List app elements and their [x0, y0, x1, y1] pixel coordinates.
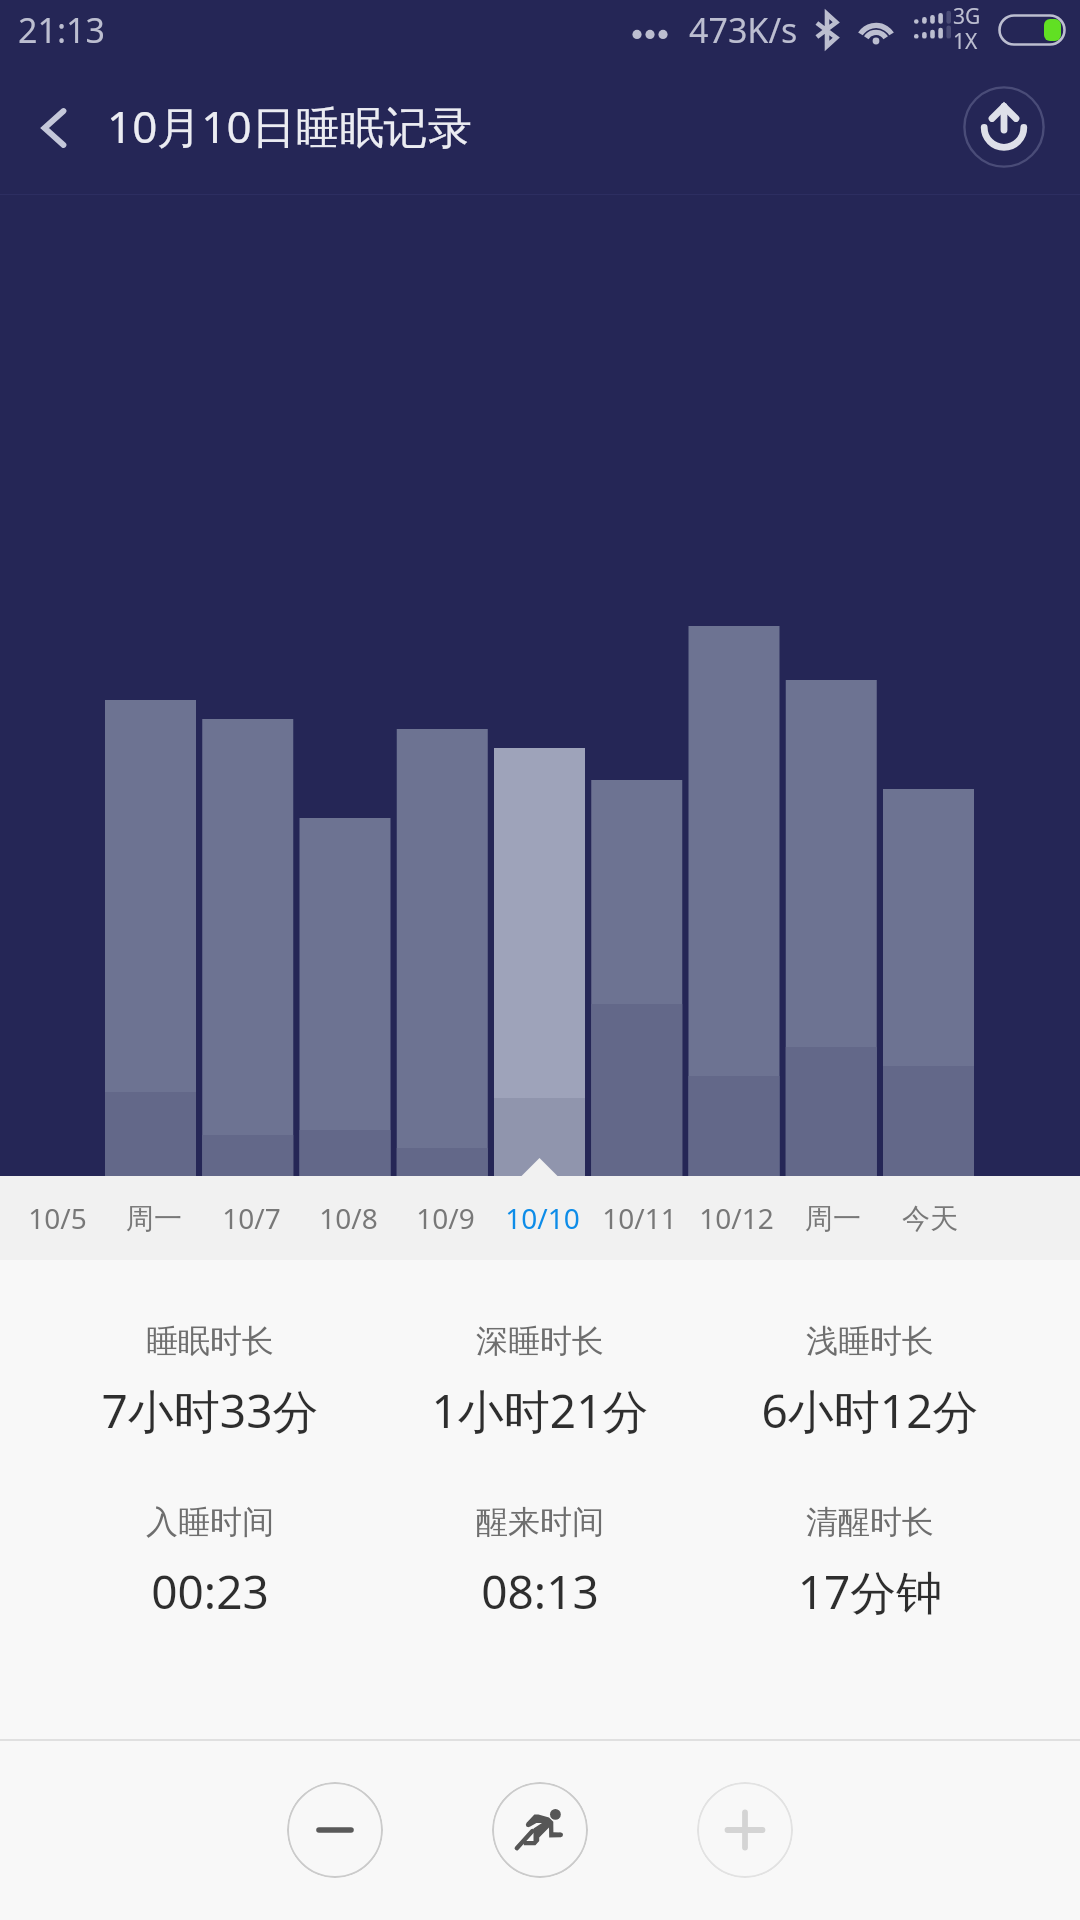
button[interactable]: 深睡时长: [375, 1313, 705, 1453]
staticText: 入睡时间: [45, 1502, 375, 1542]
button[interactable]: 醒来时间: [375, 1494, 705, 1634]
staticText: 7小时33分: [45, 1379, 375, 1442]
staticText: 10月10日睡眠记录: [107, 96, 472, 156]
button[interactable]: 10/5: [9, 1176, 105, 1260]
staticText: 473K/s: [689, 7, 798, 53]
staticText: 睡眠时长: [45, 1321, 375, 1361]
button[interactable]: 周一: [785, 1176, 881, 1260]
staticText: 10/10: [505, 1199, 580, 1237]
button[interactable]: 10/9: [397, 1176, 493, 1260]
button[interactable]: 浅睡时长: [705, 1313, 1035, 1453]
button[interactable]: 入睡时间: [45, 1494, 375, 1634]
button[interactable]: Start run: [492, 1782, 588, 1878]
button[interactable]: Decrease: [287, 1782, 383, 1878]
staticText: 10/11: [602, 1199, 677, 1237]
staticText: 周一: [126, 1201, 182, 1236]
button[interactable]: 今天: [882, 1176, 978, 1260]
staticText: 00:23: [45, 1560, 375, 1623]
button[interactable]: 清醒时长: [705, 1494, 1035, 1634]
staticText: 周一: [805, 1201, 861, 1236]
staticText: 17分钟: [705, 1560, 1035, 1623]
staticText: 10/7: [222, 1199, 281, 1237]
button[interactable]: Share: [952, 75, 1056, 179]
button[interactable]: 10/10: [494, 1176, 590, 1260]
staticText: 10/8: [319, 1199, 378, 1237]
staticText: 深睡时长: [375, 1321, 705, 1361]
button[interactable]: 10/7: [203, 1176, 299, 1260]
staticText: 08:13: [375, 1560, 705, 1623]
button[interactable]: 10/8: [300, 1176, 396, 1260]
staticText: 浅睡时长: [705, 1321, 1035, 1361]
staticText: 10/12: [699, 1199, 774, 1237]
staticText: 醒来时间: [375, 1502, 705, 1542]
staticText: 10/5: [28, 1199, 87, 1237]
button[interactable]: 睡眠时长: [45, 1313, 375, 1453]
staticText: 10/9: [416, 1199, 475, 1237]
button[interactable]: 10/11: [591, 1176, 687, 1260]
staticText: 1小时21分: [375, 1379, 705, 1442]
button[interactable]: Back: [10, 84, 98, 172]
staticText: 3G: [953, 2, 981, 31]
button[interactable]: 10/12: [688, 1176, 784, 1260]
button[interactable]: [0, 0, 1080, 1176]
staticText: 1X: [953, 27, 978, 56]
staticText: 清醒时长: [705, 1502, 1035, 1542]
button[interactable]: Increase: [697, 1782, 793, 1878]
staticText: 21:13: [18, 7, 105, 53]
button[interactable]: 周一: [106, 1176, 202, 1260]
staticText: 6小时12分: [705, 1379, 1035, 1442]
staticText: 今天: [902, 1201, 958, 1236]
